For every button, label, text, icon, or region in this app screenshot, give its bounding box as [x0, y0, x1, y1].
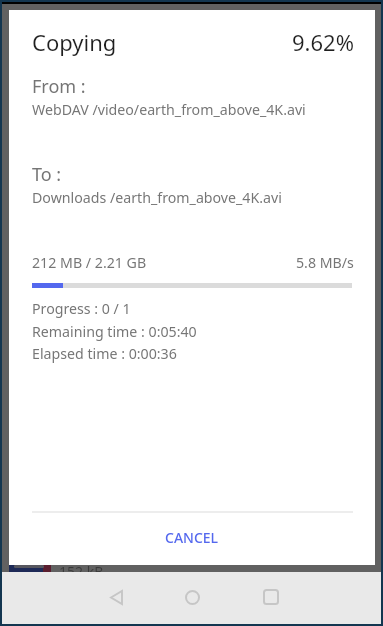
staticText: 5.8 MB/s [296, 253, 354, 272]
button[interactable]: Recent apps [247, 573, 295, 621]
staticText: 212 MB / 2.21 GB [32, 253, 147, 272]
button[interactable]: CANCEL [149, 518, 235, 556]
staticText: From : [32, 74, 86, 99]
staticText: Copying [32, 27, 117, 57]
staticText: 9.62% [292, 27, 354, 57]
button[interactable]: Back [92, 573, 140, 621]
staticText: Progress : 0 / 1 [32, 299, 131, 318]
staticText: Downloads /earth_from_above_4K.avi [32, 188, 282, 207]
staticText: 152 kB [59, 565, 104, 572]
button[interactable]: Home [168, 573, 216, 621]
staticText: CANCEL [165, 528, 219, 547]
staticText: To : [32, 162, 62, 187]
staticText: Elapsed time : 0:00:36 [32, 344, 177, 363]
staticText: Remaining time : 0:05:40 [32, 322, 197, 341]
staticText: WebDAV /video/earth_from_above_4K.avi [32, 100, 306, 119]
